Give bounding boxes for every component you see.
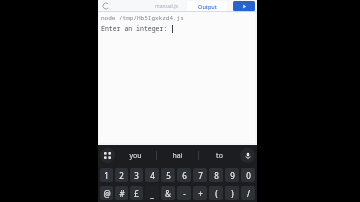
staticText: 7 xyxy=(198,170,203,181)
button[interactable]: _ xyxy=(145,186,159,200)
staticText: + xyxy=(198,188,203,199)
staticText: 4 xyxy=(150,170,155,181)
button[interactable]: # xyxy=(115,186,128,200)
button[interactable]: Voice input xyxy=(240,148,255,163)
button[interactable]: 3 xyxy=(130,168,143,182)
staticText: 8 xyxy=(214,170,219,181)
staticText: & xyxy=(165,188,171,199)
staticText: ) xyxy=(231,188,234,199)
staticText: Enter an integer: xyxy=(101,24,172,33)
staticText: you xyxy=(129,151,142,161)
button[interactable]: Run xyxy=(233,1,255,11)
staticText: 3 xyxy=(134,170,139,181)
staticText: - xyxy=(183,188,186,199)
button[interactable]: 7 xyxy=(193,168,207,182)
staticText: / xyxy=(247,188,250,199)
button[interactable]: manual.js xyxy=(148,2,184,11)
button[interactable]: 9 xyxy=(225,168,239,182)
button[interactable]: 8 xyxy=(209,168,223,182)
staticText: Output xyxy=(198,3,217,10)
button[interactable]: 0 xyxy=(241,168,255,182)
button[interactable]: you xyxy=(115,145,156,166)
staticText: hai xyxy=(172,151,183,161)
button[interactable]: & xyxy=(161,186,175,200)
staticText: 5 xyxy=(166,170,171,181)
staticText: 9 xyxy=(230,170,235,181)
button[interactable]: 6 xyxy=(177,168,191,182)
button[interactable]: 4 xyxy=(145,168,159,182)
button[interactable]: / xyxy=(241,186,255,200)
staticText: to xyxy=(216,151,223,161)
staticText: @ xyxy=(103,188,111,199)
staticText: manual.js xyxy=(155,3,178,10)
staticText: 2 xyxy=(119,170,124,181)
button[interactable]: hai xyxy=(157,145,198,166)
button[interactable]: + xyxy=(193,186,207,200)
staticText: 1 xyxy=(104,170,109,181)
button[interactable]: £ xyxy=(130,186,143,200)
staticText: £ xyxy=(134,188,139,199)
staticText: node /tmp/Hb5Igxkzd4.js xyxy=(101,14,184,22)
staticText: # xyxy=(119,188,125,199)
staticText: 0 xyxy=(246,170,251,181)
staticText: 6 xyxy=(182,170,187,181)
button[interactable]: Keyboard modes xyxy=(100,148,115,163)
button[interactable]: Reload xyxy=(101,1,111,11)
button[interactable]: @ xyxy=(100,186,113,200)
button[interactable]: 5 xyxy=(161,168,175,182)
button[interactable]: - xyxy=(177,186,191,200)
button[interactable]: ( xyxy=(209,186,223,200)
button[interactable]: to xyxy=(199,145,240,166)
button[interactable]: 1 xyxy=(100,168,113,182)
staticText: ( xyxy=(215,188,218,199)
button[interactable]: Output xyxy=(187,1,227,11)
button[interactable]: 2 xyxy=(115,168,128,182)
button[interactable]: ) xyxy=(225,186,239,200)
staticText: _ xyxy=(150,188,154,199)
